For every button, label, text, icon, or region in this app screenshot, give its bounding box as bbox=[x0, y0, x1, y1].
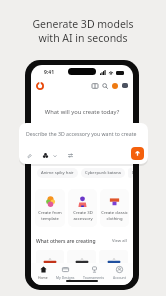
button[interactable]: Tournaments bbox=[82, 266, 106, 280]
staticText: Generate 3D models bbox=[32, 17, 134, 31]
staticText: View all bbox=[112, 238, 127, 244]
staticText: My Designs bbox=[56, 275, 75, 280]
button[interactable]: Send bbox=[131, 147, 144, 160]
button[interactable]: Attach bbox=[25, 151, 33, 159]
button[interactable]: Account bbox=[112, 266, 127, 280]
staticText: Create 3D accessory bbox=[73, 210, 93, 221]
button[interactable]: My Designs bbox=[55, 266, 76, 280]
button[interactable]: Create 3D accessory bbox=[68, 189, 97, 227]
button[interactable]: Home bbox=[37, 266, 49, 280]
button[interactable]: Profile bbox=[120, 81, 129, 90]
staticText: Account bbox=[113, 275, 126, 280]
button[interactable]: Double-b bbox=[128, 168, 133, 178]
staticText: Describe the 3D accessory you want to cr… bbox=[26, 130, 137, 137]
button[interactable]: Search bbox=[100, 81, 109, 90]
button[interactable] bbox=[67, 250, 96, 272]
staticText: 9:41 bbox=[44, 69, 54, 76]
button[interactable] bbox=[36, 250, 64, 272]
button[interactable]: Expand bbox=[51, 152, 58, 159]
button[interactable]: Home logo bbox=[35, 81, 44, 90]
staticText: Anime spiky hair bbox=[41, 170, 74, 176]
button[interactable]: Cyberpunk katana bbox=[81, 168, 125, 178]
button[interactable]: Anime spiky hair bbox=[37, 168, 78, 178]
button[interactable]: Credits bbox=[110, 81, 119, 90]
staticText: Create classic clothing bbox=[101, 210, 128, 221]
staticText: Cyberpunk katana bbox=[85, 170, 121, 176]
staticText: What will you create today? bbox=[31, 108, 133, 116]
button[interactable]: Create classic clothing bbox=[100, 189, 129, 227]
staticText: Home bbox=[38, 275, 48, 280]
button[interactable]: View all bbox=[111, 237, 128, 245]
button[interactable] bbox=[99, 250, 128, 272]
button[interactable]: Create from template bbox=[35, 189, 65, 227]
staticText: with AI in seconds bbox=[38, 31, 128, 45]
button[interactable]: Model bbox=[41, 151, 49, 159]
staticText: Create from template bbox=[38, 210, 62, 221]
staticText: What others are creating bbox=[36, 238, 96, 245]
button[interactable]: Gallery bbox=[90, 81, 99, 90]
button[interactable]: Settings bbox=[66, 151, 74, 159]
staticText: Tournaments bbox=[83, 275, 105, 280]
